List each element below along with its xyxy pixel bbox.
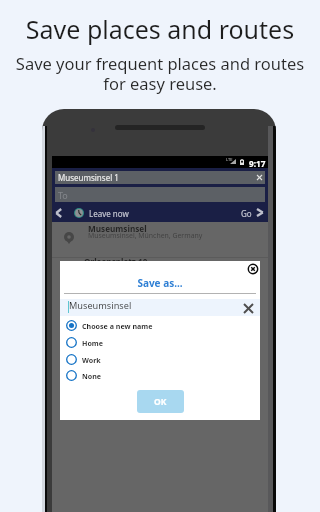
staticText: Work bbox=[82, 355, 101, 365]
staticText: Home bbox=[82, 338, 104, 348]
button[interactable]: Museumsinsel bbox=[52, 222, 268, 257]
button[interactable]: Home bbox=[60, 334, 260, 351]
staticText: Museumsinsel, München, Germany bbox=[88, 231, 203, 240]
button[interactable]: Clear bbox=[244, 304, 253, 313]
staticText: Save places and routes bbox=[0, 12, 320, 46]
staticText: Orleansplatz 10 bbox=[84, 256, 148, 267]
staticText: Choose a new name bbox=[82, 321, 153, 331]
staticText: OK bbox=[154, 396, 167, 408]
button[interactable]: Go bbox=[256, 208, 264, 217]
staticText: Museumsinsel bbox=[69, 299, 132, 312]
staticText: Save as... bbox=[60, 276, 260, 290]
staticText: None bbox=[82, 371, 102, 381]
staticText: LTE bbox=[226, 157, 233, 162]
staticText: Museumsinsel bbox=[88, 223, 147, 234]
button[interactable]: Orleansplatz 10 bbox=[52, 258, 268, 288]
staticText: 9:17 bbox=[249, 158, 266, 169]
button[interactable]: Back bbox=[55, 208, 62, 218]
staticText: To bbox=[58, 189, 68, 201]
button[interactable]: OK bbox=[137, 390, 184, 413]
button[interactable]: Choose a new name bbox=[60, 317, 260, 334]
button[interactable]: Museumsinsel bbox=[60, 299, 260, 316]
staticText: Save your frequent places and routes for… bbox=[0, 52, 320, 95]
staticText: Leave now bbox=[89, 208, 129, 219]
button[interactable]: Museumsinsel 1 bbox=[58, 171, 262, 184]
button[interactable]: None bbox=[60, 367, 260, 384]
button[interactable]: Work bbox=[60, 351, 260, 368]
staticText: Go bbox=[241, 208, 252, 219]
staticText: Museumsinsel 1 bbox=[58, 172, 119, 183]
button[interactable]: Close bbox=[247, 263, 259, 275]
